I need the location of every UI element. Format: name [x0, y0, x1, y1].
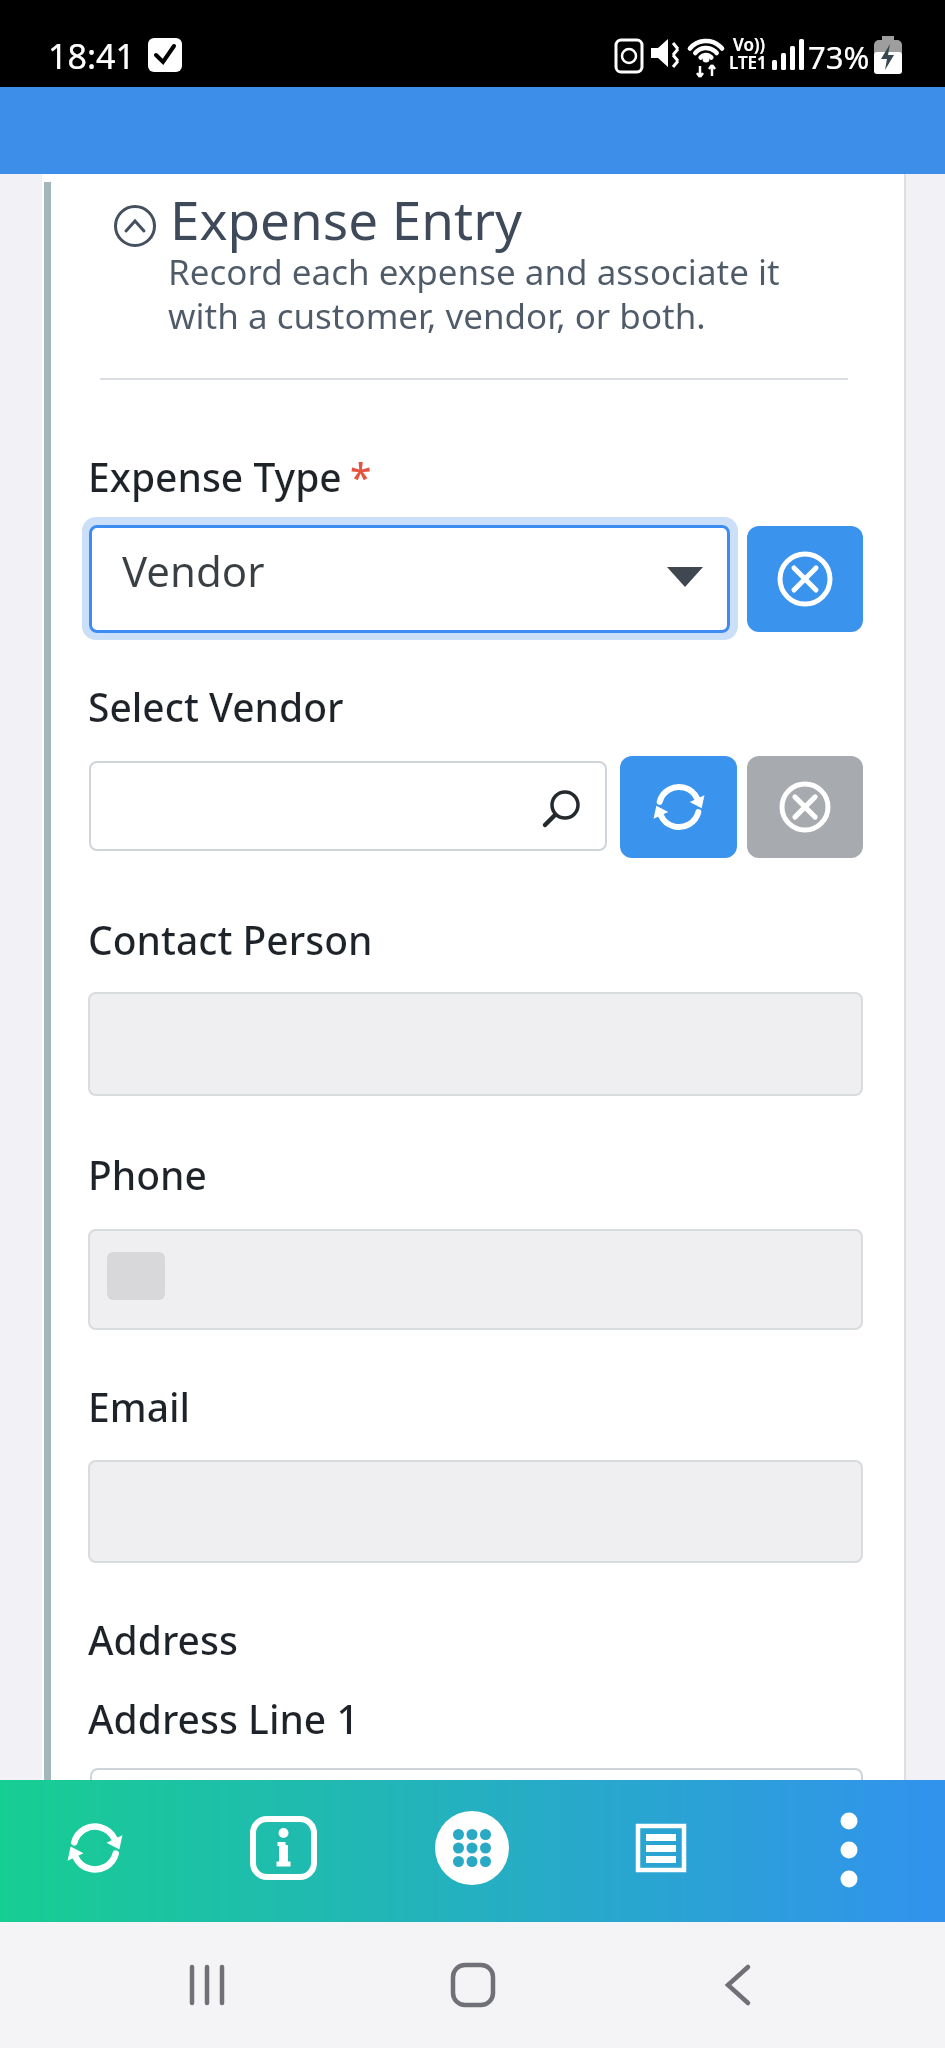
staticText: LTE1	[729, 51, 767, 74]
staticText: Select Vendor	[88, 680, 344, 733]
button[interactable]	[601, 1812, 721, 1884]
staticText: Expense Type	[88, 450, 342, 503]
button[interactable]	[620, 756, 737, 858]
staticText: *	[350, 450, 372, 503]
button[interactable]	[747, 526, 863, 632]
staticText: Vo))	[733, 33, 765, 56]
staticText: Address	[88, 1613, 238, 1666]
staticText: 73%	[808, 36, 870, 78]
staticText: Contact Person	[88, 913, 373, 966]
staticText: Email	[88, 1380, 191, 1433]
staticText: Record each expense and associate it wit…	[168, 248, 780, 339]
button[interactable]	[35, 1812, 155, 1884]
button[interactable]	[789, 1812, 909, 1884]
button[interactable]	[160, 1950, 255, 2020]
button[interactable]	[747, 756, 863, 858]
button[interactable]	[223, 1812, 343, 1884]
staticText: Expense Entry	[170, 183, 523, 255]
staticText: Phone	[88, 1148, 207, 1201]
staticText: Vendor	[122, 542, 265, 599]
staticText: 18:41	[48, 33, 135, 79]
button[interactable]: Vendor	[89, 525, 730, 633]
button[interactable]	[412, 1812, 532, 1884]
button[interactable]	[425, 1950, 520, 2020]
staticText: Address Line 1	[88, 1692, 359, 1745]
button[interactable]	[690, 1950, 785, 2020]
button[interactable]	[89, 761, 607, 851]
